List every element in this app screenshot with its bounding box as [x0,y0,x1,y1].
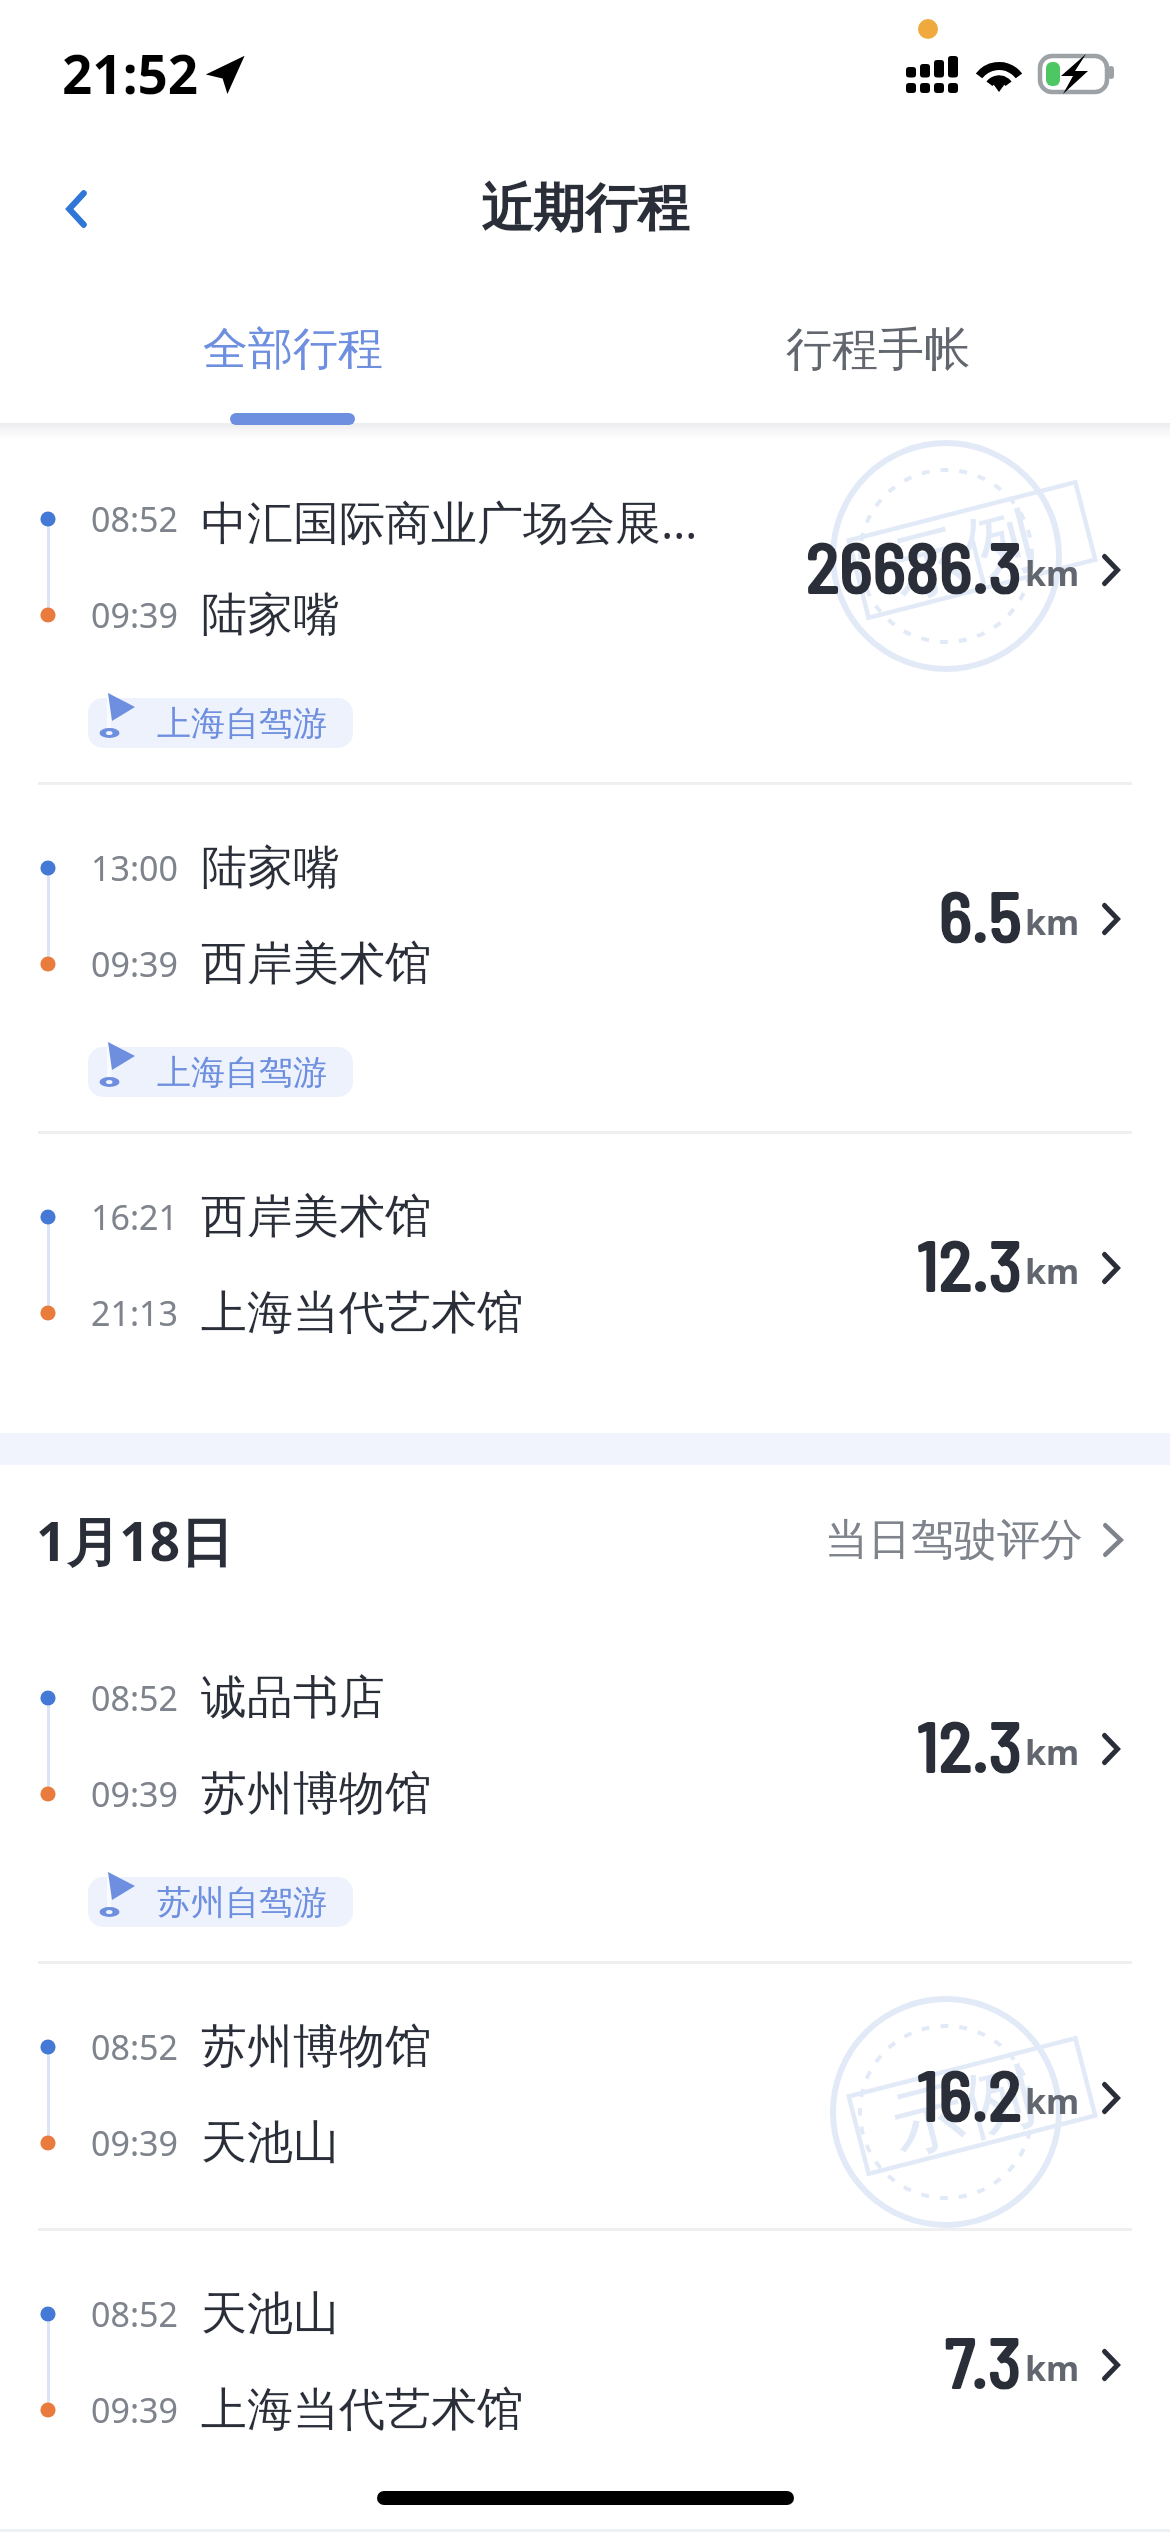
staticText: 苏州博物馆 [201,2018,431,2076]
staticText: 09:39 [91,2120,178,2166]
staticText: 上海当代艺术馆 [201,2381,523,2439]
button[interactable]: 全部行程 [0,290,585,430]
button[interactable]: 上海自驾游 [88,698,353,748]
staticText: 7.3 [945,2318,1022,2402]
staticText: 上海自驾游 [157,702,327,745]
staticText: km [1025,1729,1080,1775]
staticText: 示例 [882,493,1042,607]
staticText: 21:52 [62,37,199,109]
staticText: 09:39 [91,2387,178,2433]
button[interactable]: 当日驾驶评分 [825,1513,1123,1567]
staticText: 12.3 [917,1702,1022,1786]
staticText: 09:39 [91,1771,178,1817]
button[interactable]: 16:21 [0,1134,1170,1398]
button[interactable]: 行程手帐 [585,290,1170,430]
staticText: 西岸美术馆 [201,1188,431,1246]
staticText: 全部行程 [203,321,383,378]
staticText: 08:52 [91,1675,178,1721]
staticText: km [1025,899,1080,945]
staticText: 诚品书店 [201,1669,385,1727]
staticText: 08:52 [91,2291,178,2337]
staticText: 天池山 [201,2285,339,2343]
staticText: 09:39 [91,592,178,638]
staticText: 陆家嘴 [201,586,339,644]
staticText: 12.3 [917,1221,1022,1305]
button[interactable]: 08:52 [0,1964,1170,2228]
button[interactable]: Back [20,153,132,265]
staticText: 09:39 [91,941,178,987]
staticText: km [1025,1248,1080,1294]
staticText: 08:52 [91,2024,178,2070]
staticText: 21:13 [91,1290,178,1336]
staticText: 西岸美术馆 [201,935,431,993]
button[interactable]: 苏州自驾游 [88,1877,353,1927]
staticText: km [1025,550,1080,596]
staticText: 陆家嘴 [201,839,339,897]
staticText: 天池山 [201,2114,339,2172]
staticText: 1月18日 [36,1504,233,1576]
staticText: 26686.3 [806,523,1022,607]
staticText: 上海自驾游 [157,1051,327,1094]
staticText: 当日驾驶评分 [825,1513,1083,1567]
staticText: 13:00 [91,845,178,891]
staticText: 中汇国际商业广场会展… [201,490,698,548]
staticText: 苏州博物馆 [201,1765,431,1823]
staticText: km [1025,2345,1080,2391]
staticText: 16.2 [917,2051,1022,2135]
button[interactable]: 13:00 [0,785,1170,1131]
staticText: km [1025,2078,1080,2124]
staticText: 示例 [882,2049,1042,2163]
staticText: 6.5 [939,872,1022,956]
button[interactable]: 上海自驾游 [88,1047,353,1097]
button[interactable]: 08:52 [0,2231,1170,2495]
staticText: 08:52 [91,496,178,542]
staticText: 苏州自驾游 [157,1881,327,1924]
staticText: 近期行程 [481,176,689,242]
button[interactable]: 08:52 [0,1615,1170,1961]
staticText: 上海当代艺术馆 [201,1284,523,1342]
staticText: 16:21 [91,1194,178,1240]
staticText: 行程手帐 [786,321,970,379]
button[interactable]: 08:52 [0,436,1170,782]
